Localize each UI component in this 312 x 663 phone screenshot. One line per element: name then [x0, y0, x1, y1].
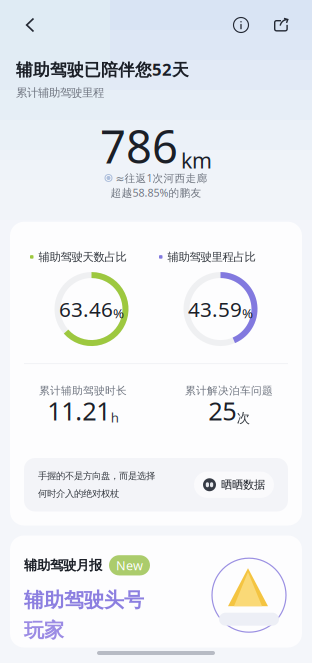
staticText: 玩家 [24, 618, 64, 643]
staticText: 次 [237, 410, 250, 426]
staticText: 累计解决泊车问题 [185, 384, 273, 397]
staticText: 辅助驾驶头号 [24, 587, 144, 613]
staticText: % [113, 304, 124, 322]
staticText: 超越58.85%的鹏友 [110, 185, 201, 200]
staticText: km [181, 146, 212, 175]
button[interactable]: Information [227, 8, 255, 42]
button[interactable]: Back [14, 8, 46, 42]
button[interactable]: 晒晒数据 [194, 472, 274, 498]
staticText: 手握的不是方向盘，而是选择 [38, 470, 155, 482]
staticText: 25 [208, 393, 236, 428]
staticText: 辅助驾驶天数占比 [38, 250, 126, 264]
staticText: 11.21 [47, 393, 110, 428]
staticText: 43.59 [188, 295, 242, 323]
staticText: 63.46 [59, 295, 113, 323]
staticText: 何时介入的绝对权杖 [38, 488, 119, 500]
staticText: 晒晒数据 [221, 478, 265, 492]
staticText: % [242, 304, 253, 322]
staticText: h [111, 408, 119, 426]
staticText: ≈往返1次河西走廊 [115, 171, 207, 185]
staticText: 786 [100, 115, 178, 177]
staticText: 辅助驾驶里程占比 [167, 250, 255, 264]
staticText: 累计辅助驾驶时长 [39, 384, 127, 397]
staticText: New [116, 557, 143, 574]
staticText: 累计辅助驾驶里程 [16, 86, 104, 100]
staticText: 辅助驾驶月报 [24, 557, 102, 574]
staticText: 辅助驾驶已陪伴您52天 [16, 58, 189, 81]
button[interactable]: Share [267, 8, 295, 42]
